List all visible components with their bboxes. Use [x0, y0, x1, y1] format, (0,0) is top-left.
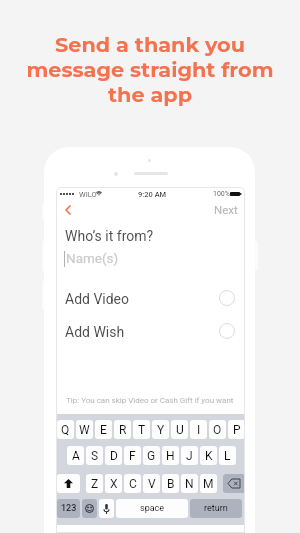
staticText: K — [205, 449, 213, 463]
button[interactable]: O — [209, 420, 226, 439]
button[interactable]: Dictate — [99, 499, 114, 518]
button[interactable]: X — [105, 474, 122, 493]
staticText: C — [129, 477, 137, 491]
staticText: Add Video — [65, 291, 130, 307]
button[interactable]: N — [181, 474, 198, 493]
staticText: space — [140, 503, 165, 514]
staticText: B — [167, 477, 175, 491]
button[interactable]: T — [133, 420, 150, 439]
staticText: Name(s) — [66, 250, 119, 266]
button[interactable]: Add Video — [56, 287, 245, 311]
staticText: X — [110, 477, 118, 491]
button[interactable]: P — [228, 420, 245, 439]
button[interactable]: Back — [58, 200, 78, 220]
button[interactable]: S — [86, 446, 103, 465]
button[interactable]: V — [143, 474, 160, 493]
button[interactable]: return — [190, 499, 242, 518]
button[interactable]: Add Wish — [56, 320, 245, 344]
button[interactable]: Next — [214, 203, 238, 216]
button[interactable]: K — [200, 446, 217, 465]
button[interactable]: R — [114, 420, 131, 439]
staticText: E — [100, 423, 107, 437]
staticText: Z — [91, 477, 99, 491]
staticText: U — [176, 423, 184, 437]
staticText: O — [213, 423, 222, 437]
button[interactable]: Numbers — [57, 499, 80, 518]
button[interactable]: H — [162, 446, 179, 465]
staticText: D — [110, 449, 118, 463]
staticText: 123 — [61, 503, 77, 514]
staticText: Q — [61, 423, 70, 437]
staticText: N — [185, 477, 194, 491]
button[interactable]: D — [105, 446, 122, 465]
staticText: M — [203, 477, 214, 491]
staticText: L — [224, 449, 231, 463]
staticText: T — [138, 423, 146, 437]
button[interactable]: Backspace — [223, 474, 245, 493]
staticText: return — [204, 503, 228, 514]
staticText: V — [148, 477, 156, 491]
staticText: R — [119, 423, 127, 437]
button[interactable]: Y — [152, 420, 169, 439]
staticText: A — [72, 449, 80, 463]
button[interactable]: W — [76, 420, 93, 439]
staticText: 9:20 AM — [138, 190, 167, 199]
button[interactable]: U — [171, 420, 188, 439]
staticText: I — [197, 423, 201, 437]
staticText: Who’s it from? — [65, 228, 154, 244]
button[interactable]: Q — [57, 420, 74, 439]
button[interactable]: M — [200, 474, 217, 493]
staticText: WILO — [79, 190, 97, 199]
staticText: Send a thank you message straight from t… — [26, 32, 274, 107]
button[interactable]: G — [143, 446, 160, 465]
staticText: W — [79, 423, 90, 437]
staticText: J — [186, 449, 193, 463]
staticText: G — [147, 449, 156, 463]
button[interactable]: J — [181, 446, 198, 465]
staticText: Tip: You can skip Video or Cash Gift if … — [66, 396, 234, 405]
button[interactable]: C — [124, 474, 141, 493]
button[interactable]: Shift — [57, 474, 80, 493]
staticText: F — [129, 449, 136, 463]
button[interactable]: E — [95, 420, 112, 439]
button[interactable]: space — [116, 499, 188, 518]
staticText: Add Wish — [65, 324, 125, 340]
staticText: Next — [214, 203, 238, 216]
button[interactable]: F — [124, 446, 141, 465]
button[interactable]: I — [190, 420, 207, 439]
button[interactable]: B — [162, 474, 179, 493]
button[interactable]: L — [219, 446, 236, 465]
button[interactable]: Emoji — [82, 499, 97, 518]
staticText: 100% — [213, 190, 230, 198]
staticText: S — [91, 449, 99, 463]
staticText: P — [233, 423, 241, 437]
button[interactable]: Z — [86, 474, 103, 493]
staticText: Y — [157, 423, 165, 437]
staticText: H — [166, 449, 175, 463]
button[interactable]: A — [67, 446, 84, 465]
